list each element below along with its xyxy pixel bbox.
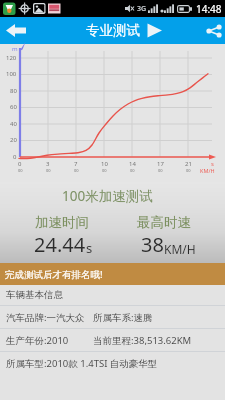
staticText: 38: [141, 231, 164, 258]
staticText: 7: [74, 160, 78, 168]
button[interactable]: Back: [0, 17, 32, 44]
staticText: 00: [186, 168, 191, 173]
staticText: 0: [13, 153, 17, 161]
staticText: 00: [158, 168, 163, 173]
staticText: 14:48: [196, 2, 222, 16]
staticText: 14: [129, 160, 136, 168]
staticText: 车辆基本信息: [6, 289, 63, 301]
staticText: 20: [10, 136, 17, 144]
staticText: s: [86, 239, 93, 257]
staticText: KM/H: [164, 241, 196, 257]
staticText: 3G: [137, 4, 147, 14]
staticText: s: [211, 160, 214, 168]
staticText: 10: [101, 160, 108, 168]
staticText: 3: [46, 160, 50, 168]
staticText: 当前里程:38,513.62KM: [93, 334, 192, 347]
button[interactable]: 汽车品牌:一汽大众: [0, 306, 225, 329]
staticText: 40: [10, 120, 17, 128]
staticText: 生产年份:2010: [6, 334, 69, 347]
staticText: 00: [18, 168, 23, 173]
staticText: 00: [130, 168, 135, 173]
staticText: 所属车系:速腾: [93, 311, 153, 324]
button[interactable]: Share: [203, 17, 225, 44]
staticText: 24.44: [34, 231, 86, 258]
staticText: 所属车型:2010款 1.4TSI 自动豪华型: [6, 357, 158, 370]
button[interactable]: 生产年份:2010: [0, 329, 225, 352]
button[interactable]: 所属车型:2010款 1.4TSI 自动豪华型: [0, 352, 225, 375]
staticText: m: [12, 45, 18, 53]
staticText: 60: [10, 103, 17, 111]
staticText: 00: [102, 168, 107, 173]
button[interactable]: Start test: [143, 17, 165, 44]
staticText: 最高时速: [137, 214, 191, 231]
staticText: 加速时间: [35, 214, 89, 231]
staticText: 完成测试后才有排名哦!: [5, 268, 103, 281]
staticText: 00: [74, 168, 79, 173]
staticText: 0: [18, 160, 22, 168]
staticText: 00: [46, 168, 51, 173]
staticText: 17: [157, 160, 164, 168]
staticText: 80: [10, 87, 17, 95]
staticText: KM/H: [200, 167, 215, 174]
staticText: 汽车品牌:一汽大众: [6, 311, 85, 324]
button[interactable]: 完成测试后才有排名哦!: [0, 263, 225, 285]
button[interactable]: 车辆基本信息: [0, 285, 225, 306]
staticText: 21: [185, 160, 192, 168]
staticText: 100米加速测试: [62, 187, 153, 205]
staticText: 100: [6, 70, 17, 78]
staticText: 专业测试: [86, 22, 140, 39]
staticText: 120: [6, 54, 17, 62]
